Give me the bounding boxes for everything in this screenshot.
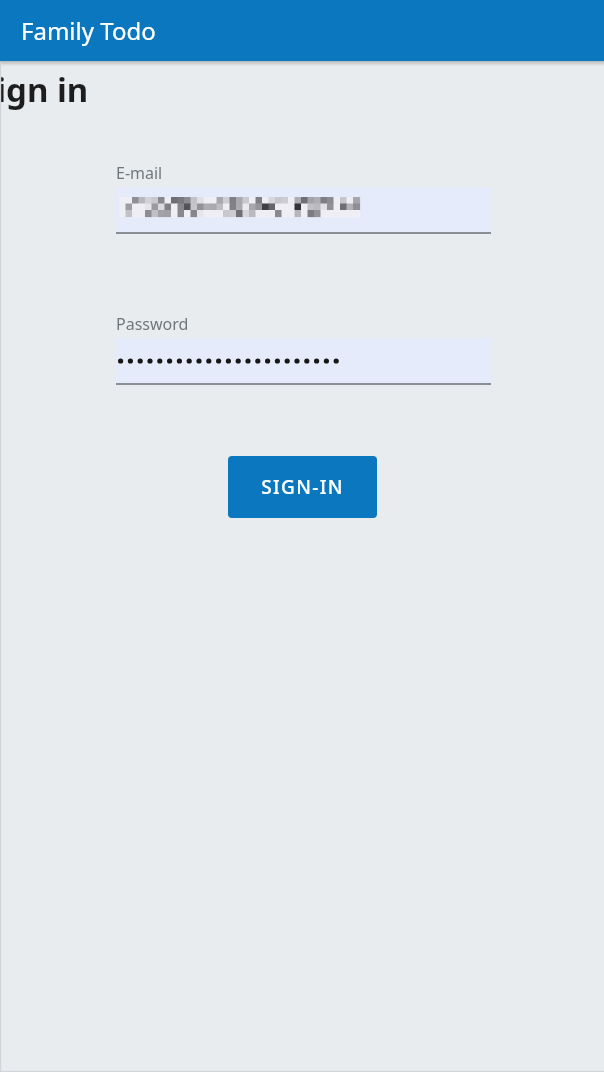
staticText: Password [116, 313, 189, 335]
button[interactable]: Password input [116, 338, 491, 385]
staticText: E-mail [116, 162, 163, 184]
staticText: Sign in [0, 67, 89, 112]
button[interactable]: E-mail input [116, 187, 491, 234]
staticText: SIGN-IN [261, 474, 344, 500]
button[interactable]: SIGN-IN [228, 456, 377, 518]
staticText: Family Todo [21, 14, 156, 47]
